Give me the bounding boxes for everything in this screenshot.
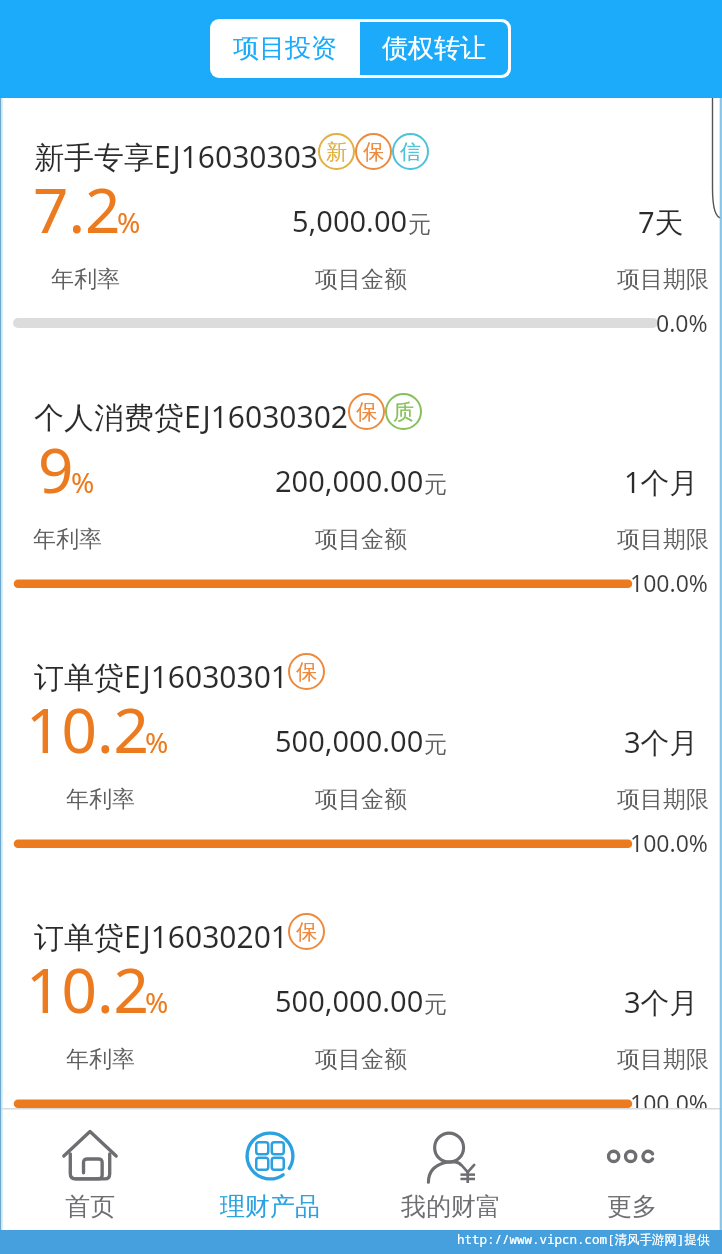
- staticText: 500,000.00: [275, 981, 424, 1020]
- other: 更多: [605, 1129, 659, 1183]
- staticText: 500,000.00: [275, 721, 424, 760]
- staticText: 5,000.00: [292, 201, 408, 240]
- button[interactable]: 债权转让: [360, 22, 508, 75]
- staticText: %: [145, 723, 169, 761]
- staticText: 首页: [65, 1191, 115, 1222]
- staticText: http://www.vipcn.com[清风手游网]提供: [457, 1231, 710, 1248]
- staticText: 新: [326, 139, 347, 165]
- staticText: 年利率: [51, 265, 120, 294]
- button[interactable]: 订单贷EJ16030201: [0, 878, 722, 1108]
- other: 首页: [63, 1129, 117, 1183]
- staticText: 100.0%: [630, 567, 708, 598]
- staticText: 7.2: [33, 167, 121, 251]
- button[interactable]: 理财产品: [180, 1108, 360, 1230]
- staticText: %: [71, 463, 95, 501]
- staticText: 保: [296, 659, 317, 685]
- staticText: 100.0%: [630, 1087, 708, 1118]
- staticText: 保: [356, 399, 377, 425]
- staticText: 100.0%: [630, 827, 708, 858]
- staticText: 0.0%: [656, 307, 708, 338]
- other: 我的财富: [424, 1129, 478, 1183]
- staticText: 项目期限: [617, 265, 709, 294]
- staticText: 年利率: [66, 785, 135, 814]
- staticText: 项目金额: [315, 525, 407, 554]
- staticText: 项目金额: [315, 785, 407, 814]
- staticText: 项目金额: [315, 265, 407, 294]
- staticText: 新手专享EJ16030303: [34, 136, 318, 177]
- staticText: 元: [408, 210, 431, 239]
- staticText: 年利率: [33, 525, 102, 554]
- staticText: 7天: [638, 202, 684, 242]
- staticText: 订单贷EJ16030301: [34, 656, 288, 697]
- staticText: 年利率: [66, 1045, 135, 1074]
- button[interactable]: 项目投资: [210, 19, 360, 78]
- staticText: 元: [424, 990, 447, 1019]
- button[interactable]: 订单贷EJ16030301: [0, 618, 722, 878]
- staticText: 10.2: [26, 687, 150, 771]
- staticText: 订单贷EJ16030201: [34, 916, 288, 957]
- staticText: 9: [38, 427, 74, 511]
- staticText: 质: [393, 399, 414, 425]
- other: 理财产品: [243, 1129, 297, 1183]
- staticText: 信: [400, 139, 421, 165]
- staticText: 理财产品: [220, 1191, 320, 1222]
- staticText: 项目期限: [617, 525, 709, 554]
- staticText: %: [145, 983, 169, 1021]
- staticText: 债权转让: [382, 32, 486, 65]
- staticText: 元: [424, 730, 447, 759]
- staticText: 项目期限: [617, 1045, 709, 1074]
- staticText: 项目投资: [233, 32, 337, 65]
- staticText: 更多: [607, 1191, 657, 1222]
- button[interactable]: 新手专享EJ16030303: [0, 98, 722, 358]
- staticText: 3个月: [624, 722, 699, 762]
- staticText: 1个月: [624, 462, 699, 502]
- staticText: 个人消费贷EJ16030302: [34, 396, 348, 437]
- button[interactable]: 我的财富: [360, 1108, 541, 1230]
- button[interactable]: 个人消费贷EJ16030302: [0, 358, 722, 618]
- staticText: 项目期限: [617, 785, 709, 814]
- staticText: %: [117, 203, 141, 241]
- staticText: 元: [424, 470, 447, 499]
- staticText: 10.2: [26, 947, 150, 1031]
- button[interactable]: 更多: [541, 1108, 722, 1230]
- staticText: 200,000.00: [275, 461, 424, 500]
- button[interactable]: 首页: [0, 1108, 180, 1230]
- staticText: 我的财富: [401, 1191, 501, 1222]
- staticText: 3个月: [624, 982, 699, 1022]
- staticText: 保: [296, 919, 317, 945]
- staticText: 项目金额: [315, 1045, 407, 1074]
- staticText: 保: [363, 139, 384, 165]
